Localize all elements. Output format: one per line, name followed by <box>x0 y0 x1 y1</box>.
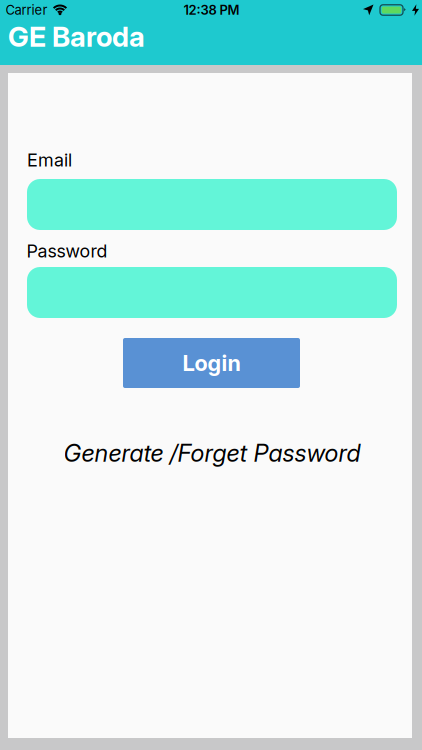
staticText: Email <box>27 149 72 171</box>
staticText: 12:38 PM <box>183 2 239 18</box>
staticText: Password <box>26 240 107 262</box>
staticText: Carrier <box>5 2 47 18</box>
staticText: Generate /Forget Password <box>63 439 360 467</box>
button[interactable]: Generate /Forget Password <box>63 439 360 467</box>
staticText: GE Baroda <box>8 20 145 53</box>
button[interactable]: Login <box>123 338 300 388</box>
staticText: Login <box>182 350 240 376</box>
